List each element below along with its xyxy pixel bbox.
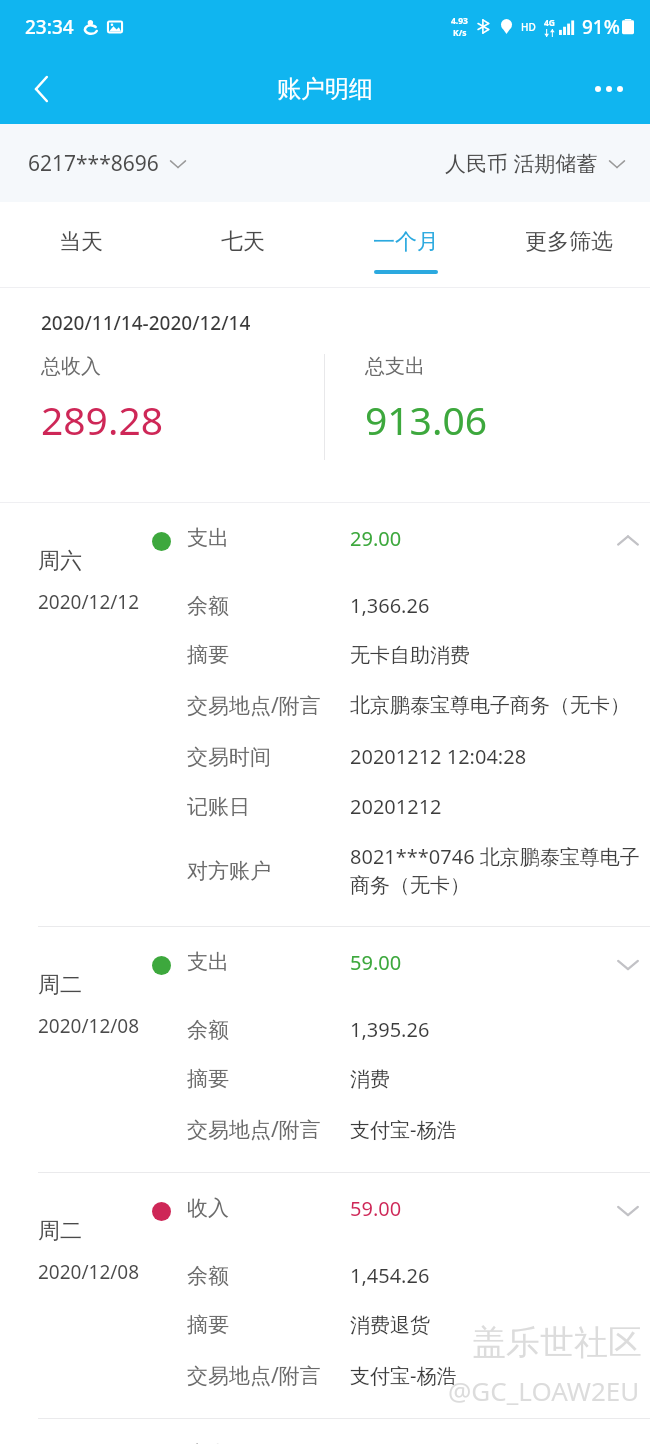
staticText: 1,454.26: [350, 1262, 640, 1289]
staticText: 盖乐世社区: [472, 1321, 642, 1364]
button[interactable]: 一个月: [324, 202, 487, 288]
staticText: 北京鹏泰宝尊电子商务（无卡）: [350, 693, 640, 718]
staticText: 收入: [187, 1195, 350, 1221]
staticText: HD: [521, 20, 536, 34]
staticText: 1,395.26: [350, 1016, 640, 1043]
staticText: 总收入: [41, 354, 101, 379]
staticText: 摘要: [187, 1312, 350, 1338]
staticText: 2020/12/08: [38, 1013, 140, 1039]
staticText: 当天: [59, 228, 103, 256]
staticText: 支出: [187, 1441, 350, 1444]
staticText: 人民币 活期储蓄: [445, 149, 598, 178]
button[interactable]: 七天: [162, 202, 324, 288]
staticText: 1,366.26: [350, 592, 640, 619]
button[interactable]: 周二: [0, 927, 650, 1172]
staticText: 2020/11/14-2020/12/14: [41, 310, 251, 336]
staticText: 交易地点/附言: [187, 691, 350, 720]
button[interactable]: 6217***8696: [28, 149, 189, 178]
button[interactable]: Expand: [606, 1189, 650, 1233]
button[interactable]: 更多筛选: [487, 202, 650, 288]
staticText: 摘要: [187, 642, 350, 668]
staticText: 2020/12/12: [38, 589, 140, 615]
staticText: 记账日: [187, 794, 350, 820]
staticText: 23:34: [25, 14, 74, 40]
staticText: 支付宝-杨浩: [350, 1362, 640, 1389]
staticText: 2020/12/08: [38, 1259, 140, 1285]
button[interactable]: 当天: [0, 202, 162, 288]
staticText: 周六: [38, 547, 82, 575]
staticText: 摘要: [187, 1066, 350, 1092]
staticText: 对方账户: [187, 858, 350, 884]
staticText: 更多筛选: [525, 228, 613, 256]
staticText: 消费退货: [350, 1313, 640, 1338]
staticText: 交易地点/附言: [187, 1115, 350, 1144]
button[interactable]: Collapse: [606, 519, 650, 563]
staticText: 29.00: [350, 525, 606, 552]
button[interactable]: 周六: [0, 503, 650, 926]
button[interactable]: 人民币 活期储蓄: [445, 149, 628, 178]
staticText: 6217***8696: [28, 149, 159, 178]
staticText: 账户明细: [277, 74, 373, 104]
staticText: 交易时间: [187, 744, 350, 770]
staticText: 余额: [187, 1017, 350, 1043]
staticText: 余额: [187, 1263, 350, 1289]
staticText: 59.00: [350, 949, 606, 976]
staticText: 交易地点/附言: [187, 1361, 350, 1390]
button[interactable]: Back: [14, 61, 70, 117]
staticText: 无卡自助消费: [350, 643, 640, 668]
staticText: 289.28: [41, 393, 163, 446]
staticText: 20201212 12:04:28: [350, 743, 640, 770]
staticText: 4G: [544, 17, 556, 29]
button[interactable]: More options: [582, 62, 636, 116]
staticText: 总支出: [365, 354, 425, 379]
staticText: 20201212: [350, 793, 640, 820]
staticText: K/s: [453, 27, 467, 39]
staticText: 8021***0746 北京鹏泰宝尊电子商务（无卡）: [350, 843, 640, 898]
button[interactable]: 周二: [0, 1173, 650, 1418]
staticText: 59.00: [350, 1195, 606, 1222]
staticText: 周二: [38, 971, 82, 999]
staticText: 支付宝-杨浩: [350, 1116, 640, 1143]
staticText: 支出: [187, 525, 350, 551]
staticText: 消费: [350, 1067, 640, 1092]
button[interactable]: Expand: [606, 943, 650, 987]
staticText: 周二: [38, 1217, 82, 1245]
staticText: 余额: [187, 593, 350, 619]
staticText: 七天: [221, 228, 265, 256]
staticText: 一个月: [373, 228, 439, 256]
staticText: 4.93: [451, 15, 468, 27]
staticText: 91%: [582, 14, 620, 40]
staticText: 支出: [187, 949, 350, 975]
staticText: @GC_LOAW2EU: [448, 1373, 640, 1408]
staticText: 913.06: [365, 393, 487, 446]
